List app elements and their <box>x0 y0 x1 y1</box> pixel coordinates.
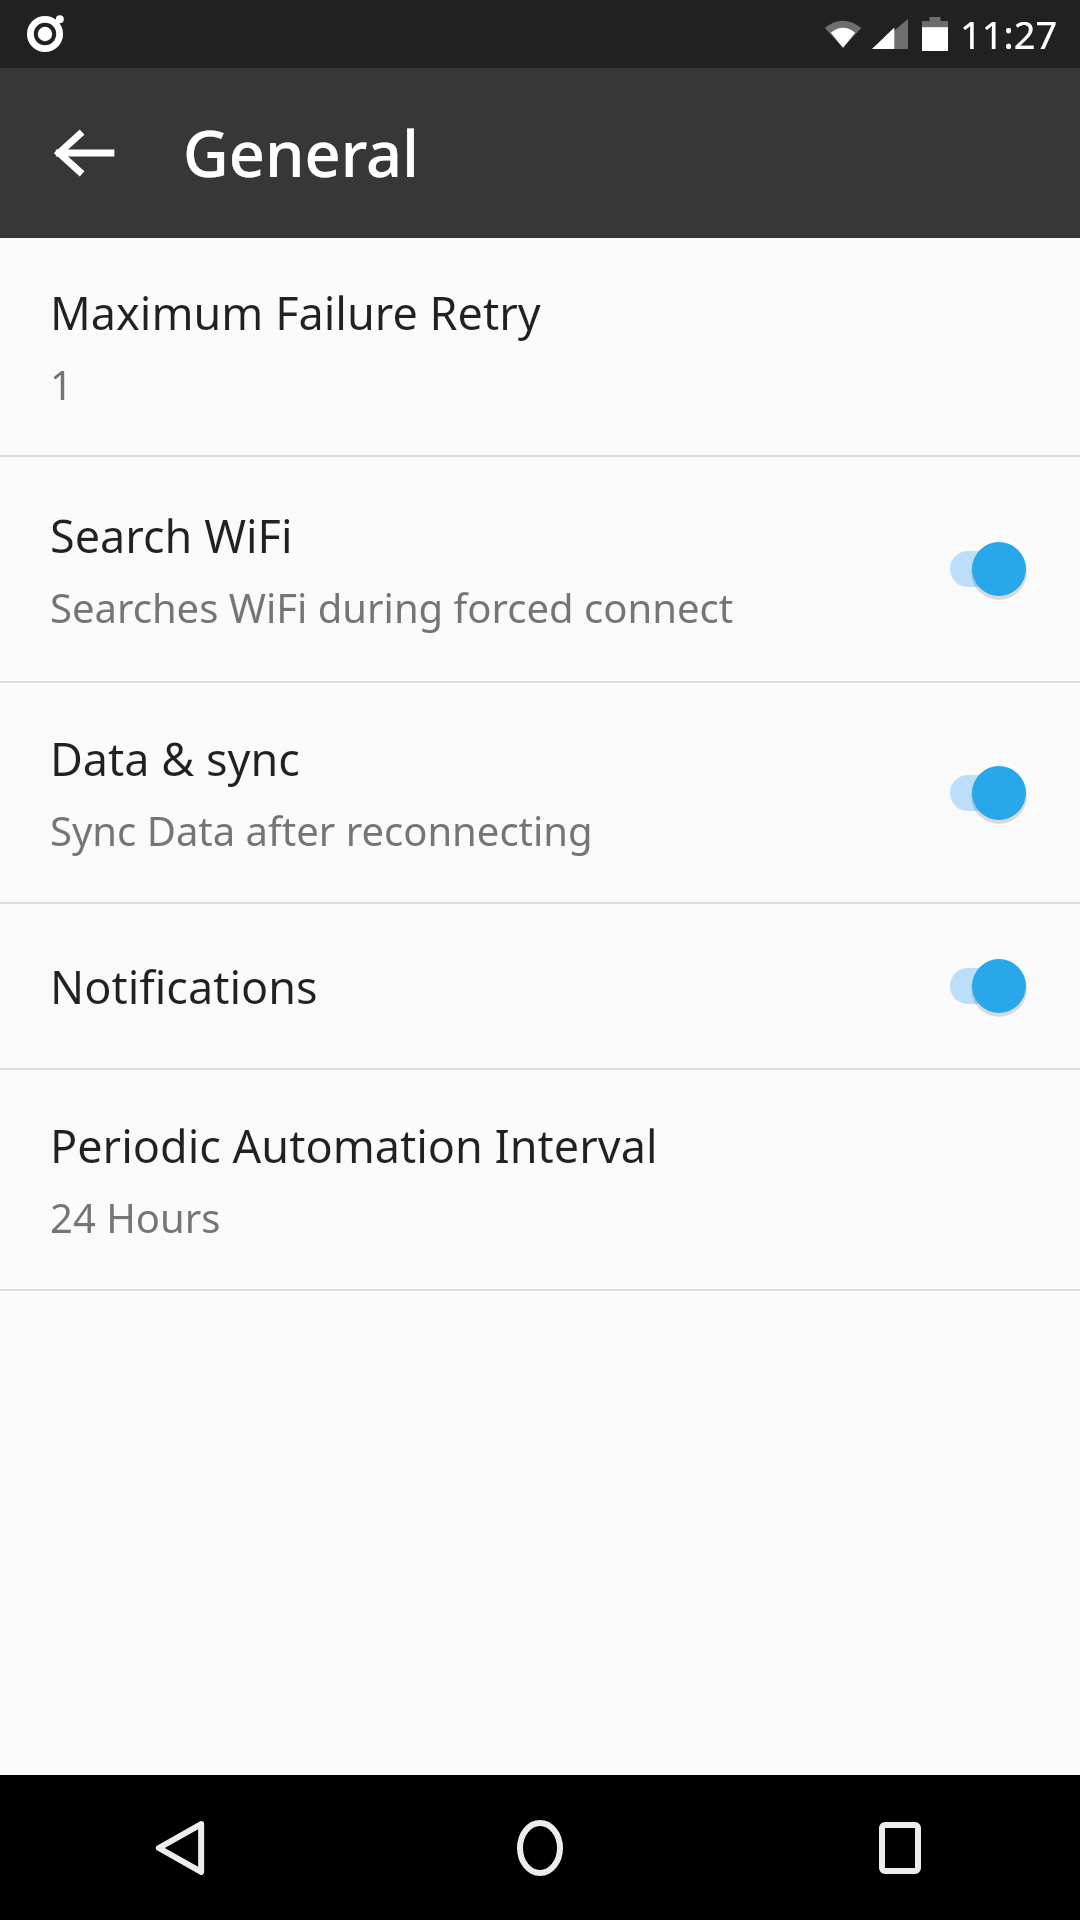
staticText: 24 Hours <box>50 1190 221 1244</box>
staticText: Periodic Automation Interval <box>50 1115 658 1176</box>
button[interactable]: Data & sync toggle <box>926 753 1026 833</box>
staticText: 1 <box>50 357 73 411</box>
button[interactable]: Notifications toggle <box>926 946 1026 1026</box>
button[interactable]: Back <box>28 97 140 209</box>
button[interactable]: Data & sync <box>0 683 1080 902</box>
staticText: 11:27 <box>960 8 1058 60</box>
staticText: General <box>183 110 420 196</box>
button[interactable]: Search WiFi toggle <box>926 529 1026 609</box>
staticText: Sync Data after reconnecting <box>50 803 593 857</box>
button[interactable]: Maximum Failure Retry <box>0 238 1080 455</box>
button[interactable]: Back <box>0 1775 360 1920</box>
button[interactable]: Home <box>360 1775 720 1920</box>
button[interactable]: Notifications <box>0 904 1080 1068</box>
staticText: Searches WiFi during forced connect <box>50 580 734 634</box>
button[interactable]: Periodic Automation Interval <box>0 1070 1080 1289</box>
staticText: Data & sync <box>50 728 300 789</box>
staticText: Notifications <box>50 956 318 1017</box>
button[interactable]: Recent apps <box>720 1775 1080 1920</box>
button[interactable]: Search WiFi <box>0 457 1080 681</box>
staticText: Search WiFi <box>50 505 293 566</box>
staticText: Maximum Failure Retry <box>50 282 541 343</box>
